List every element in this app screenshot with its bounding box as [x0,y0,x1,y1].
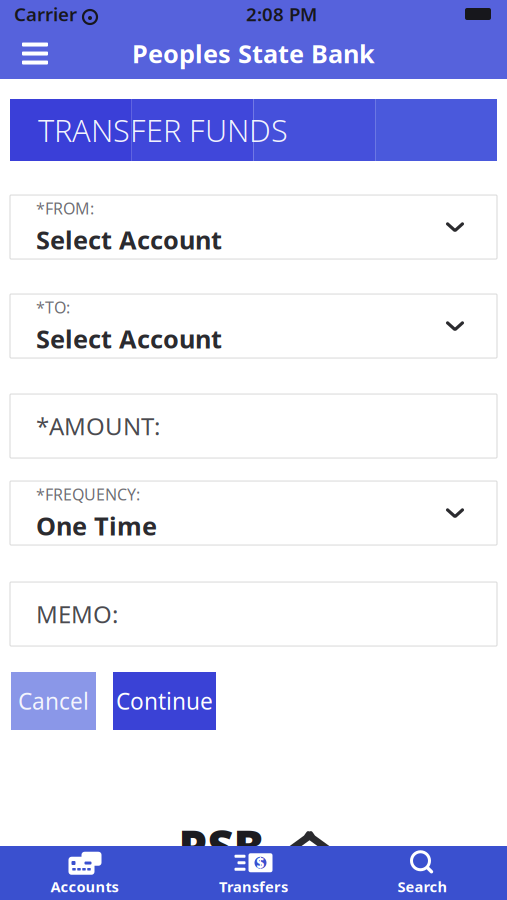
staticText: Carrier [14,2,77,26]
staticText: *FROM: [36,198,94,219]
staticText: Select Account [36,322,222,355]
staticText: Cancel [18,686,89,716]
button[interactable]: *AMOUNT: [10,394,497,458]
button[interactable]: *FROM: [10,195,497,259]
staticText: Accounts [50,877,118,896]
staticText: Search [397,877,447,896]
button[interactable]: $ [169,847,338,899]
button[interactable]: Search [338,847,507,899]
button[interactable]: Menu [12,31,58,75]
staticText: $ [256,854,264,872]
staticText: TRANSFER FUNDS [38,110,288,150]
staticText: *AMOUNT: [36,410,160,442]
staticText: *TO: [36,297,70,318]
staticText: *FREQUENCY: [36,484,140,505]
button[interactable]: *FREQUENCY: [10,481,497,545]
staticText: MEMO: [36,598,118,630]
button[interactable]: Continue [113,672,216,730]
button[interactable]: Cancel [11,672,96,730]
button[interactable]: MEMO: [10,582,497,646]
staticText: Peoples State Bank [132,37,375,70]
staticText: Select Account [36,223,222,256]
button[interactable]: *TO: [10,294,497,358]
staticText: Continue [116,686,213,716]
staticText: Transfers [219,877,288,896]
button[interactable]: Accounts [0,847,169,899]
staticText: 2:08 PM [246,2,317,26]
staticText: One Time [36,509,157,542]
staticText: PSB [178,816,264,876]
